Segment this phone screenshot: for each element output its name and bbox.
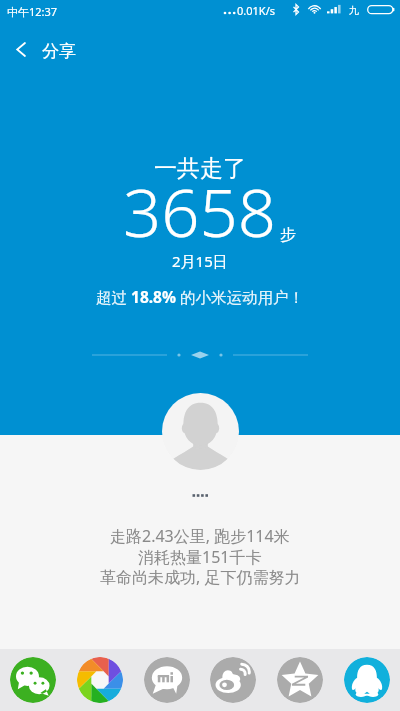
staticText: 步 — [280, 225, 296, 245]
staticText: 超过 18.8% 的小米运动用户！ — [96, 286, 304, 307]
button[interactable]: 分享 — [42, 39, 76, 60]
button[interactable]: QZone — [277, 657, 323, 703]
button[interactable]: WeChat Moments — [77, 657, 123, 703]
staticText: 2月15日 — [172, 251, 228, 271]
staticText: 3658 — [123, 165, 277, 256]
staticText: 走路2.43公里, 跑步114米 — [110, 525, 290, 547]
button[interactable]: Back — [0, 28, 42, 70]
button[interactable]: WeChat — [10, 657, 56, 703]
staticText: 0.01K/s — [237, 3, 275, 18]
button[interactable]: MiTalk — [144, 657, 190, 703]
button[interactable]: Weibo — [210, 657, 256, 703]
button[interactable]: QQ — [344, 657, 390, 703]
staticText: 革命尚未成功, 足下仍需努力 — [100, 566, 301, 588]
staticText: 消耗热量151千卡 — [138, 546, 262, 568]
staticText: 一共走了 — [154, 154, 246, 183]
staticText: 中午12:37 — [7, 4, 58, 19]
staticText: 分享 — [42, 41, 76, 62]
staticText: 九 — [349, 4, 359, 17]
